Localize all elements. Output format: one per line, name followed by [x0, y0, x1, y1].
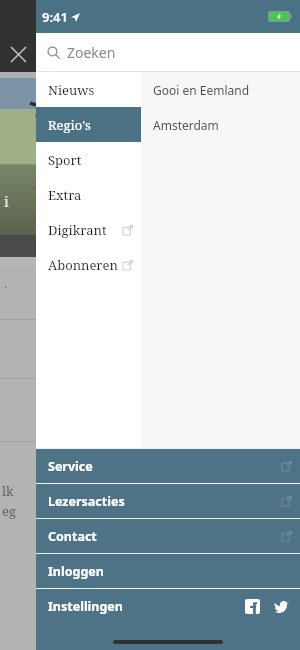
staticText: Abonneren	[48, 256, 118, 274]
staticText: Nieuws	[48, 81, 95, 99]
staticText: Gooi en Eemland	[153, 82, 250, 98]
staticText: Extra	[48, 186, 82, 204]
button[interactable]: Zoeken	[36, 33, 300, 72]
staticText: Inloggen	[48, 563, 104, 580]
button[interactable]: Regio's	[36, 107, 141, 142]
button[interactable]: Service	[36, 449, 300, 483]
button[interactable]: Gooi en Eemland	[141, 72, 300, 107]
staticText: Digikrant	[48, 221, 107, 239]
staticText: Sport	[48, 151, 82, 169]
staticText: Contact	[48, 528, 97, 545]
staticText: Lezersacties	[48, 493, 125, 510]
staticText: Zoeken	[67, 43, 116, 62]
staticText: eg	[2, 502, 16, 520]
button[interactable]: Extra	[36, 177, 141, 212]
button[interactable]: Facebook	[242, 596, 262, 616]
staticText: lk	[2, 482, 14, 500]
button[interactable]: Sport	[36, 142, 141, 177]
staticText: Amsterdam	[153, 117, 219, 133]
button[interactable]: Nieuws	[36, 72, 141, 107]
button[interactable]: Instellingen	[36, 589, 300, 623]
button[interactable]: Sluiten	[0, 36, 36, 72]
button[interactable]: Inloggen	[36, 554, 300, 588]
staticText: 9:41	[42, 8, 68, 26]
button[interactable]: Contact	[36, 519, 300, 553]
button[interactable]: Digikrant	[36, 212, 141, 247]
button[interactable]: Twitter	[272, 596, 292, 616]
staticText: i	[4, 191, 9, 211]
button[interactable]: Abonneren	[36, 247, 141, 282]
staticText: Regio's	[48, 116, 91, 134]
staticText: ·	[4, 279, 8, 295]
button[interactable]: Amsterdam	[141, 107, 300, 142]
staticText: Service	[48, 458, 93, 475]
staticText: Instellingen	[48, 598, 123, 615]
button[interactable]: Lezersacties	[36, 484, 300, 518]
